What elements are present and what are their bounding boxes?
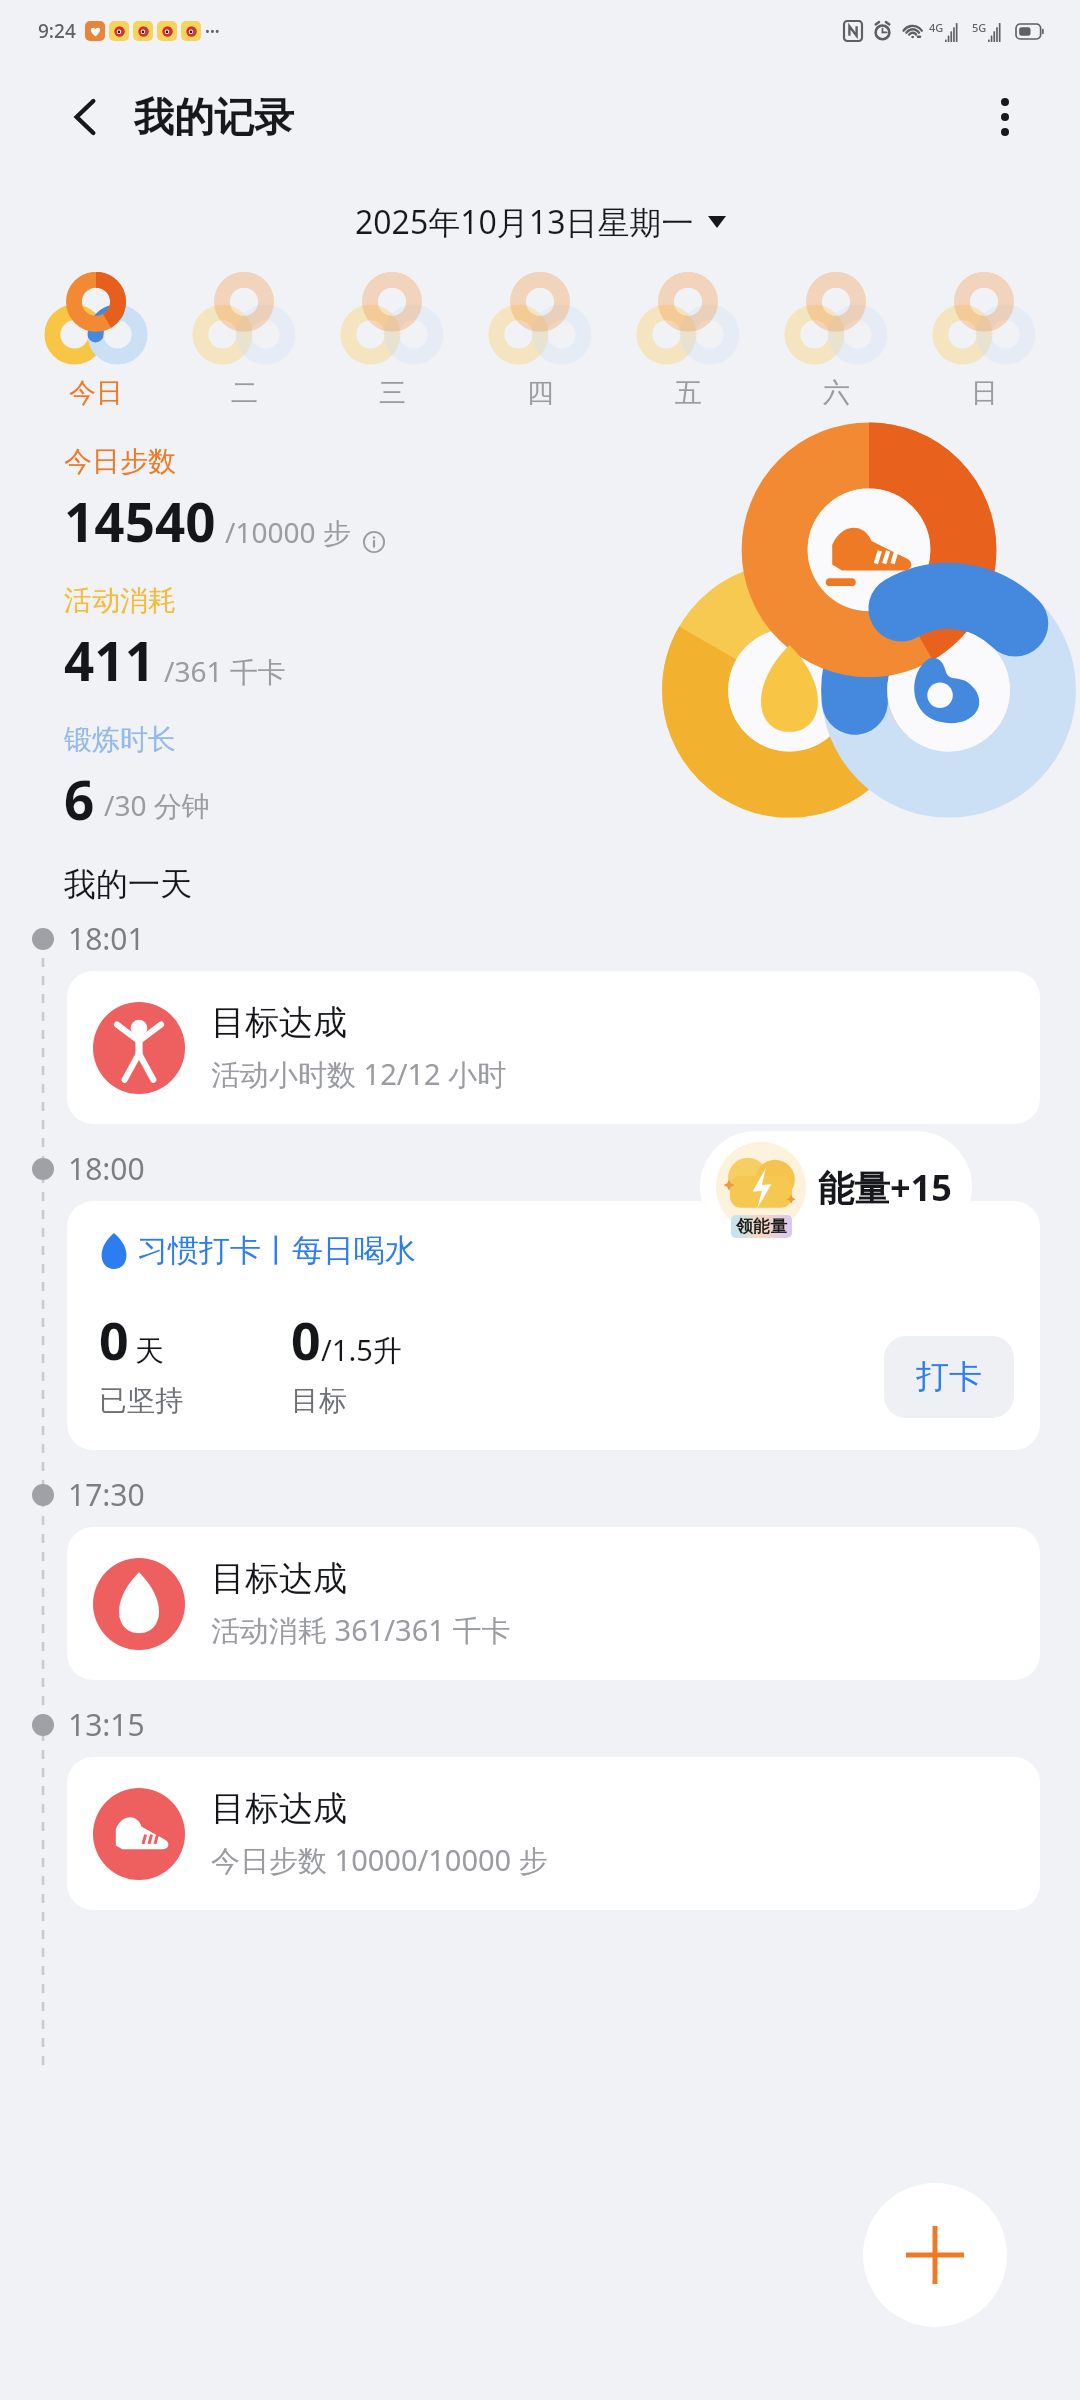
button[interactable]: 六 [776, 272, 896, 414]
staticText: 目标达成 [211, 1001, 347, 1044]
staticText: 17:30 [68, 1474, 145, 1515]
staticText: 我的一天 [64, 864, 192, 904]
staticText: 我的记录 [134, 92, 294, 142]
staticText: 5G [972, 20, 987, 35]
staticText: 411 [64, 624, 155, 696]
staticText: 目标达成 [211, 1787, 347, 1830]
button[interactable]: 四 [480, 272, 600, 414]
staticText: 天 [135, 1333, 164, 1370]
staticText: 18:01 [68, 918, 145, 959]
staticText: 打卡 [916, 1356, 982, 1398]
staticText: /361 千卡 [164, 652, 286, 690]
staticText: 今日步数 10000/10000 步 [211, 1840, 548, 1880]
staticText: /1.5升 [321, 1330, 402, 1370]
button[interactable]: 今日步数 [64, 444, 387, 557]
staticText: 13:15 [68, 1704, 145, 1745]
staticText: 目标 [291, 1383, 347, 1418]
staticText: ••• [205, 22, 220, 40]
staticText: 目标达成 [211, 1557, 347, 1600]
staticText: 能量+15 [818, 1163, 952, 1212]
staticText: 四 [527, 376, 554, 410]
staticText: 六 [823, 376, 850, 410]
button[interactable]: 活动消耗 [64, 583, 286, 696]
staticText: 今日 [69, 376, 123, 410]
staticText: 14540 [64, 485, 216, 557]
button[interactable]: 领能量 [700, 1131, 972, 1243]
staticText: 0 [99, 1304, 129, 1375]
staticText: 三 [379, 376, 406, 410]
staticText: 今日步数 [64, 444, 176, 479]
staticText: 锻炼时长 [64, 722, 176, 757]
button[interactable]: 三 [332, 272, 452, 414]
button[interactable]: 目标达成 [67, 1757, 1040, 1910]
staticText: /10000 步 [225, 513, 351, 551]
button[interactable]: More options [974, 86, 1036, 148]
button[interactable]: Add record [863, 2183, 1007, 2327]
button[interactable]: 2025年10月13日星期一 [0, 194, 1080, 250]
staticText: 4G [929, 20, 944, 35]
staticText: 0 [291, 1304, 321, 1375]
staticText: 活动消耗 361/361 千卡 [211, 1610, 511, 1650]
staticText: 活动小时数 12/12 小时 [211, 1054, 507, 1094]
button[interactable]: 五 [628, 272, 748, 414]
staticText: 9:24 [38, 18, 76, 44]
staticText: 18:00 [68, 1148, 145, 1189]
staticText: 二 [231, 376, 258, 410]
staticText: 领能量 [736, 1216, 787, 1237]
button[interactable]: 今日 [36, 272, 156, 414]
staticText: 已坚持 [99, 1383, 183, 1418]
staticText: 活动消耗 [64, 583, 176, 618]
button[interactable]: 打卡 [884, 1336, 1014, 1418]
staticText: 习惯打卡丨每日喝水 [137, 1231, 416, 1270]
staticText: 6 [64, 763, 95, 830]
button[interactable]: Back [58, 90, 112, 144]
button[interactable]: 二 [184, 272, 304, 414]
staticText: /30 分钟 [104, 786, 210, 824]
button[interactable]: 日 [924, 272, 1044, 414]
button[interactable]: 锻炼时长 [64, 722, 210, 830]
button[interactable]: 习惯打卡丨每日喝水 [67, 1201, 1040, 1450]
button[interactable]: 目标达成 [67, 1527, 1040, 1680]
staticText: 日 [971, 376, 998, 410]
button[interactable]: 目标达成 [67, 971, 1040, 1124]
staticText: 五 [675, 376, 702, 410]
staticText: 2025年10月13日星期一 [355, 200, 694, 244]
